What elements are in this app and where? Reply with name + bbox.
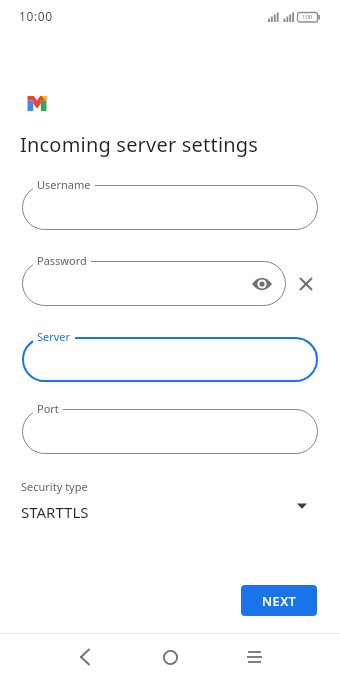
button[interactable]: NEXT: [241, 585, 317, 616]
staticText: 100: [302, 13, 313, 21]
button[interactable]: [299, 277, 313, 291]
button[interactable]: [22, 261, 286, 306]
button[interactable]: [235, 638, 273, 676]
staticText: STARTTLS: [21, 502, 89, 522]
button[interactable]: [22, 337, 318, 382]
staticText: NEXT: [262, 592, 297, 610]
staticText: Security type: [21, 479, 88, 494]
staticText: Username: [37, 177, 91, 192]
button[interactable]: [66, 638, 104, 676]
staticText: Port: [37, 401, 59, 416]
button[interactable]: [22, 409, 318, 454]
staticText: Server: [37, 329, 71, 344]
button[interactable]: [252, 277, 272, 291]
staticText: Incoming server settings: [20, 131, 259, 158]
staticText: Password: [37, 253, 87, 268]
button[interactable]: [22, 185, 318, 230]
button[interactable]: [151, 638, 189, 676]
staticText: 10:00: [19, 8, 53, 24]
button[interactable]: Security type: [0, 474, 340, 530]
